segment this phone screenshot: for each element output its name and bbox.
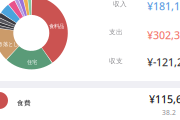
staticText: ¥115,6 [149,92,180,106]
staticText: 38.2 [162,108,176,117]
staticText: 住宅 [27,59,37,66]
staticText: 支出 [109,28,123,36]
staticText: ¥181,1 [147,0,180,13]
staticText: ¥-121,2 [147,55,180,69]
staticText: ¥302,3 [147,28,180,42]
staticText: 食費 [17,99,31,107]
staticText: 引き落とし [0,41,18,48]
staticText: 収入 [113,0,127,8]
staticText: 食料品 [49,23,64,30]
staticText: 収支 [109,57,123,65]
